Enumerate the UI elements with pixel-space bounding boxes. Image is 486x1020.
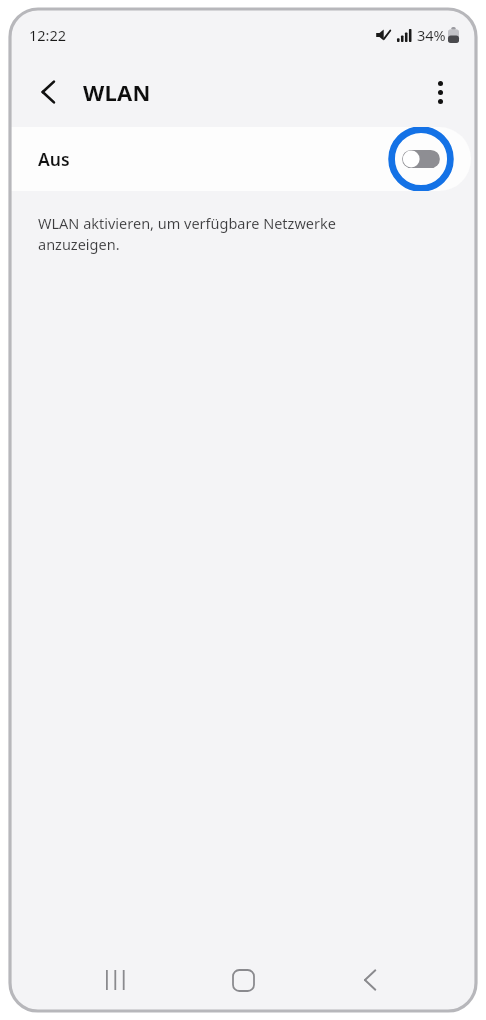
button[interactable]: Zurück [343,953,397,1007]
button[interactable]: Letzte Apps [89,953,143,1007]
staticText: 34% [417,25,446,45]
button[interactable]: Aus [11,127,471,191]
button[interactable]: Zurück [27,71,69,113]
button[interactable]: WLAN ein- oder ausschalten [385,127,457,191]
button[interactable]: Startbildschirm [216,953,270,1007]
button[interactable]: Weitere Optionen [419,71,461,113]
staticText: Aus [38,147,70,171]
staticText: WLAN aktivieren, um verfügbare Netzwerke… [38,213,336,255]
staticText: 12:22 [29,25,67,45]
staticText: WLAN [83,77,151,107]
